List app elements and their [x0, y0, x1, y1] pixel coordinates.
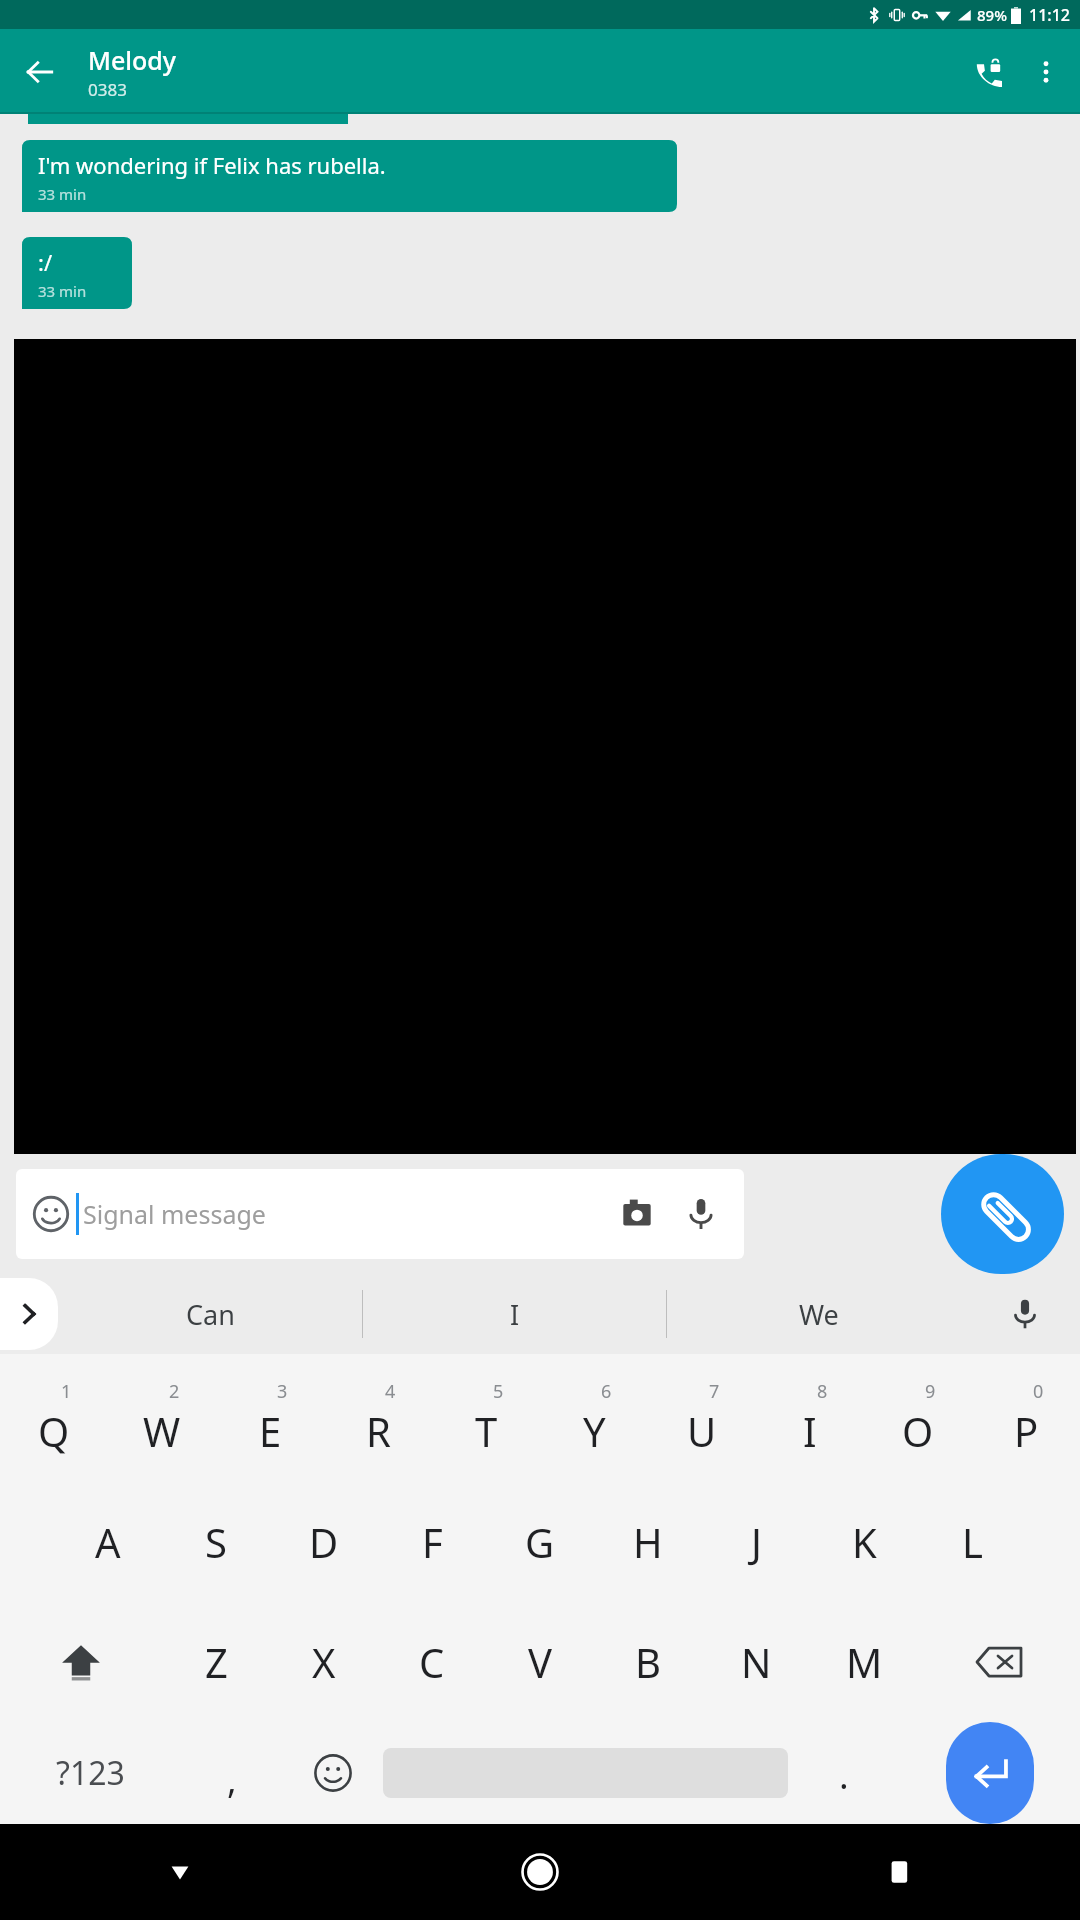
button[interactable]: J: [702, 1482, 810, 1602]
button[interactable]: Shift: [0, 1602, 162, 1722]
button[interactable]: 6: [540, 1354, 648, 1482]
staticText: G: [525, 1515, 555, 1569]
staticText: 8: [817, 1379, 828, 1404]
button[interactable]: .: [788, 1722, 900, 1824]
other: Emoji: [32, 1195, 70, 1233]
staticText: D: [309, 1515, 339, 1569]
staticText: W: [143, 1404, 181, 1458]
button[interactable]: 7: [648, 1354, 756, 1482]
staticText: 0383: [88, 78, 127, 101]
button[interactable]: ?123: [0, 1722, 181, 1824]
staticText: 33 min: [38, 281, 87, 301]
staticText: 7: [709, 1379, 720, 1404]
button[interactable]: Voice message: [674, 1187, 728, 1241]
button[interactable]: Backspace: [918, 1602, 1080, 1722]
staticText: I: [510, 1296, 520, 1333]
staticText: Z: [205, 1635, 228, 1689]
button[interactable]: K: [810, 1482, 918, 1602]
staticText: H: [633, 1515, 663, 1569]
staticText: K: [852, 1515, 877, 1569]
button[interactable]: 4: [324, 1354, 432, 1482]
button[interactable]: S: [162, 1482, 270, 1602]
staticText: 9: [925, 1379, 936, 1404]
staticText: Can: [186, 1296, 235, 1333]
staticText: B: [635, 1635, 661, 1689]
staticText: .: [839, 1751, 849, 1800]
button[interactable]: D: [270, 1482, 378, 1602]
button[interactable]: 0: [972, 1354, 1080, 1482]
button[interactable]: Secure call: [962, 44, 1018, 100]
staticText: F: [422, 1515, 443, 1569]
button[interactable]: Enter: [946, 1722, 1034, 1824]
staticText: C: [419, 1635, 445, 1689]
button[interactable]: V: [486, 1602, 594, 1722]
staticText: P: [1014, 1404, 1039, 1458]
staticText: Signal message: [83, 1197, 610, 1231]
staticText: L: [962, 1515, 983, 1569]
staticText: 89%: [977, 5, 1007, 25]
staticText: 6: [601, 1379, 612, 1404]
staticText: M: [846, 1635, 883, 1689]
staticText: U: [687, 1404, 717, 1458]
staticText: V: [528, 1635, 552, 1689]
button[interactable]: Emoji: [16, 1169, 744, 1259]
button[interactable]: Z: [162, 1602, 270, 1722]
button[interactable]: X: [270, 1602, 378, 1722]
button[interactable]: Can: [58, 1274, 362, 1354]
staticText: We: [799, 1296, 839, 1333]
button[interactable]: 2: [108, 1354, 216, 1482]
button[interactable]: I'm wondering if Felix has rubella.: [22, 140, 677, 212]
staticText: 11:12: [1029, 4, 1070, 26]
staticText: Q: [38, 1404, 70, 1458]
button[interactable]: :/: [22, 237, 132, 309]
staticText: ,: [227, 1755, 237, 1804]
staticText: O: [902, 1404, 934, 1458]
button[interactable]: Home: [360, 1824, 720, 1920]
staticText: Y: [583, 1404, 606, 1458]
staticText: N: [741, 1635, 772, 1689]
button[interactable]: More options: [1018, 44, 1074, 100]
staticText: 4: [385, 1379, 396, 1404]
button[interactable]: 8: [756, 1354, 864, 1482]
button[interactable]: We: [667, 1274, 970, 1354]
button[interactable]: Hide keyboard: [0, 1824, 360, 1920]
button[interactable]: N: [702, 1602, 810, 1722]
staticText: R: [366, 1404, 391, 1458]
button[interactable]: Voice input: [970, 1274, 1080, 1354]
staticText: ?123: [56, 1751, 125, 1795]
button[interactable]: 9: [864, 1354, 972, 1482]
button[interactable]: G: [486, 1482, 594, 1602]
button[interactable]: L: [918, 1482, 1026, 1602]
staticText: :/: [38, 247, 53, 277]
button[interactable]: Camera: [610, 1187, 664, 1241]
button[interactable]: C: [378, 1602, 486, 1722]
button[interactable]: 3: [216, 1354, 324, 1482]
button[interactable]: M: [810, 1602, 918, 1722]
button[interactable]: 5: [432, 1354, 540, 1482]
staticText: J: [751, 1515, 762, 1569]
staticText: 33 min: [38, 184, 87, 204]
button[interactable]: ,: [181, 1722, 282, 1824]
staticText: I: [803, 1404, 817, 1458]
staticText: 3: [277, 1379, 288, 1404]
button[interactable]: Attach: [941, 1154, 1064, 1274]
staticText: 0: [1033, 1379, 1044, 1404]
staticText: X: [312, 1635, 336, 1689]
button[interactable]: H: [594, 1482, 702, 1602]
button[interactable]: 1: [0, 1354, 108, 1482]
staticText: 1: [61, 1379, 72, 1404]
staticText: 5: [493, 1379, 504, 1404]
button[interactable]: Back: [12, 44, 68, 100]
button[interactable]: Expand suggestions: [0, 1278, 58, 1350]
staticText: T: [475, 1404, 498, 1458]
button[interactable]: Recent apps: [720, 1824, 1080, 1920]
button[interactable]: Emoji keyboard: [282, 1722, 383, 1824]
button[interactable]: I: [363, 1274, 666, 1354]
staticText: A: [95, 1515, 121, 1569]
button[interactable]: B: [594, 1602, 702, 1722]
staticText: E: [259, 1404, 282, 1458]
button[interactable]: A: [54, 1482, 162, 1602]
button[interactable]: F: [378, 1482, 486, 1602]
staticText: I'm wondering if Felix has rubella.: [38, 150, 386, 180]
